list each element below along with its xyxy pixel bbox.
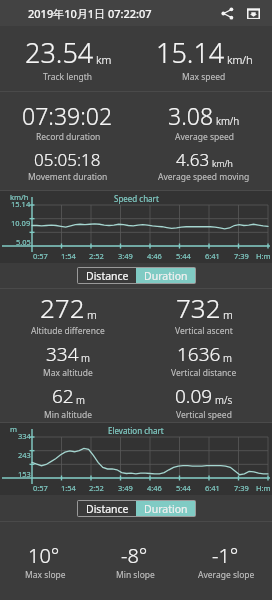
staticText: m (223, 351, 232, 365)
button[interactable]: Duration (136, 268, 195, 283)
staticText: 0:57 (33, 251, 48, 261)
staticText: m (223, 307, 233, 322)
staticText: 10.09 (11, 218, 31, 228)
staticText: m (87, 307, 97, 322)
staticText: Min altitude (44, 409, 92, 421)
staticText: 153 (18, 469, 31, 479)
staticText: Min slope (116, 569, 155, 581)
staticText: Duration (144, 502, 188, 516)
staticText: Max speed (182, 71, 226, 83)
staticText: Vertical distance (171, 367, 237, 379)
staticText: 1:54 (61, 483, 76, 493)
staticText: 5:44 (176, 483, 191, 493)
staticText: 05:05:18 (34, 148, 101, 171)
staticText: 15.14 (11, 199, 31, 209)
staticText: Record duration (36, 131, 101, 143)
staticText: Vertical ascent (175, 325, 233, 337)
staticText: Movement duration (28, 171, 108, 183)
staticText: 1:54 (61, 251, 76, 261)
staticText: km/h (216, 114, 240, 128)
staticText: Track length (43, 71, 93, 83)
staticText: km (96, 52, 112, 67)
staticText: 4:46 (147, 251, 162, 261)
staticText: -1° (212, 542, 239, 569)
staticText: 0.09 (175, 383, 213, 409)
staticText: 334 (18, 431, 31, 441)
staticText: 732 (176, 290, 221, 325)
staticText: Altitude difference (31, 325, 105, 337)
staticText: Duration (144, 269, 188, 283)
staticText: 15.14 (156, 34, 225, 71)
button[interactable]: Duration (136, 501, 195, 516)
staticText: 4:46 (147, 483, 162, 493)
staticText: 5.05 (16, 237, 31, 247)
staticText: 6:41 (205, 251, 220, 261)
staticText: 3:49 (118, 483, 133, 493)
staticText: 6:41 (205, 483, 220, 493)
staticText: 3.08 (168, 100, 214, 131)
staticText: Vertical speed (176, 409, 232, 421)
staticText: 5:44 (176, 251, 191, 261)
staticText: 2:52 (89, 483, 104, 493)
staticText: 62 (52, 383, 74, 409)
staticText: 2019年10月1日 07:22:07 (28, 6, 152, 21)
staticText: m (10, 424, 18, 434)
staticText: 0:57 (33, 483, 48, 493)
staticText: Speed chart (114, 193, 159, 204)
staticText: km/h (212, 157, 233, 169)
staticText: 272 (40, 290, 85, 325)
staticText: H:m (256, 251, 271, 261)
staticText: m/s (215, 393, 233, 407)
staticText: Distance (86, 502, 129, 516)
staticText: 07:39:02 (22, 100, 113, 131)
staticText: m (81, 351, 90, 365)
staticText: 10° (28, 542, 60, 569)
staticText: 7:39 (234, 483, 249, 493)
staticText: Distance (86, 269, 129, 283)
staticText: 23.54 (25, 34, 94, 71)
staticText: 4.63 (176, 148, 210, 171)
staticText: 2:52 (89, 251, 104, 261)
staticText: 7:39 (234, 251, 249, 261)
staticText: km/h (227, 52, 253, 67)
staticText: Max altitude (43, 367, 93, 379)
staticText: 334 (46, 341, 79, 367)
staticText: Max slope (25, 569, 66, 581)
button[interactable]: Distance (78, 268, 136, 283)
staticText: km/h (10, 192, 29, 202)
staticText: Average slope (198, 569, 255, 581)
staticText: Elevation chart (108, 425, 164, 436)
button[interactable]: Save (242, 2, 264, 24)
staticText: m (76, 393, 85, 407)
staticText: 3:49 (118, 251, 133, 261)
staticText: H:m (256, 483, 271, 493)
staticText: 243 (18, 450, 31, 460)
button[interactable]: Share (216, 2, 238, 24)
staticText: -8° (121, 542, 148, 569)
staticText: Average speed (175, 131, 234, 143)
button[interactable]: Distance (78, 501, 136, 516)
staticText: 1636 (177, 341, 221, 367)
staticText: Average speed moving (158, 171, 250, 183)
